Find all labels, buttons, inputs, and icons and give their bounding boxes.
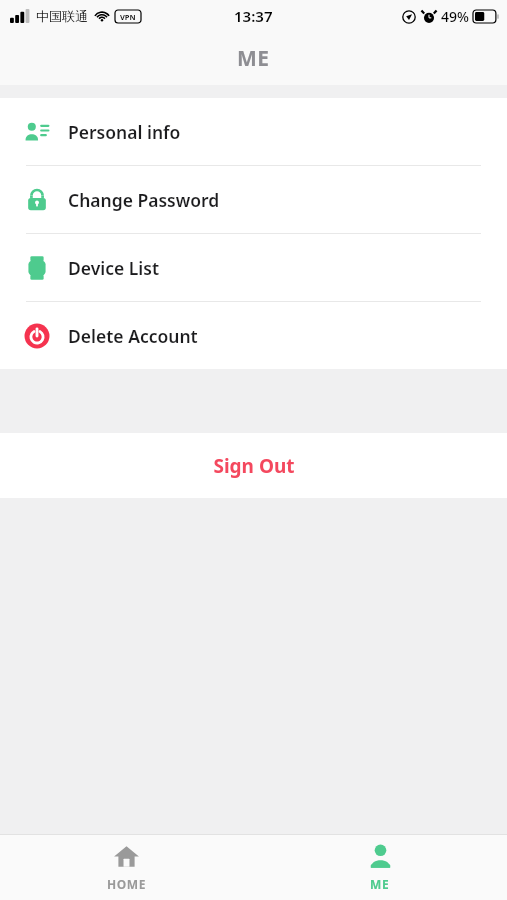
button[interactable]: Delete Account	[0, 302, 507, 369]
staticText: Personal info	[68, 120, 181, 144]
button[interactable]: Personal info	[0, 98, 507, 165]
staticText: ME	[370, 876, 390, 892]
button[interactable]: Change Password	[0, 166, 507, 233]
staticText: Delete Account	[68, 324, 198, 348]
button[interactable]: Device List	[0, 234, 507, 301]
button[interactable]: ME	[253, 835, 507, 900]
staticText: Sign Out	[213, 453, 295, 479]
button[interactable]: Sign Out	[0, 433, 507, 498]
button[interactable]: HOME	[0, 835, 253, 900]
staticText: VPN	[120, 12, 136, 22]
staticText: 13:37	[234, 6, 273, 26]
staticText: Change Password	[68, 188, 220, 212]
staticText: Device List	[68, 256, 160, 280]
staticText: HOME	[107, 876, 147, 892]
staticText: ME	[237, 44, 270, 73]
staticText: 49%	[441, 7, 469, 26]
staticText: 中国联通	[36, 8, 88, 24]
